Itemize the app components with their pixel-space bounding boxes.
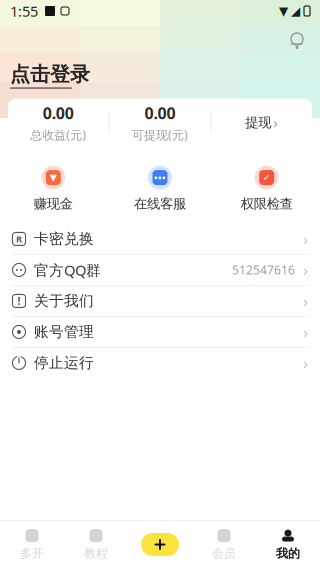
staticText: ✓: [263, 172, 271, 183]
button[interactable]: Notifications: [280, 26, 314, 56]
staticText: 关于我们: [34, 292, 94, 310]
staticText: ›: [273, 113, 278, 132]
staticText: 总收益(元): [30, 127, 86, 143]
staticText: 点击登录: [10, 62, 90, 87]
button[interactable]: 官方QQ群: [0, 255, 320, 285]
staticText: 可提现(元): [132, 127, 188, 143]
staticText: R: [16, 233, 22, 245]
staticText: 1:55: [10, 1, 38, 21]
button[interactable]: Add: [128, 521, 192, 568]
staticText: •••: [154, 171, 166, 184]
staticText: 赚现金: [34, 196, 73, 212]
staticText: !: [17, 294, 20, 308]
staticText: 会员: [212, 546, 236, 561]
button[interactable]: ✓: [213, 165, 320, 212]
button[interactable]: 我的: [256, 521, 320, 568]
staticText: ◢: [291, 4, 300, 18]
button[interactable]: ▼: [0, 165, 107, 212]
button[interactable]: 多开: [0, 521, 64, 568]
staticText: 我的: [276, 546, 300, 561]
staticText: 权限检查: [241, 196, 293, 212]
button[interactable]: •••: [107, 165, 213, 212]
staticText: ›: [303, 228, 308, 249]
button[interactable]: 账号管理: [0, 317, 320, 347]
staticText: ▼: [279, 4, 288, 18]
staticText: 提现: [245, 114, 271, 131]
staticText: ▼: [50, 172, 57, 183]
button[interactable]: 教程: [64, 521, 128, 568]
staticText: 教程: [84, 546, 108, 561]
staticText: ›: [303, 352, 308, 373]
staticText: 账号管理: [34, 323, 94, 341]
staticText: 官方QQ群: [34, 260, 101, 280]
staticText: 停止运行: [34, 354, 94, 372]
staticText: 卡密兑换: [34, 230, 94, 248]
button[interactable]: R: [0, 224, 320, 254]
button[interactable]: 点击登录: [10, 62, 90, 89]
button[interactable]: 提现: [211, 99, 312, 147]
staticText: 0.00: [144, 102, 175, 124]
staticText: ›: [303, 321, 308, 342]
staticText: 512547616: [232, 262, 295, 278]
button[interactable]: 会员: [192, 521, 256, 568]
staticText: 0.00: [43, 102, 74, 124]
button[interactable]: !: [0, 286, 320, 316]
staticText: 多开: [20, 546, 44, 561]
staticText: ›: [303, 259, 308, 280]
button[interactable]: 停止运行: [0, 348, 320, 378]
staticText: ›: [303, 290, 308, 311]
staticText: 在线客服: [134, 196, 186, 212]
